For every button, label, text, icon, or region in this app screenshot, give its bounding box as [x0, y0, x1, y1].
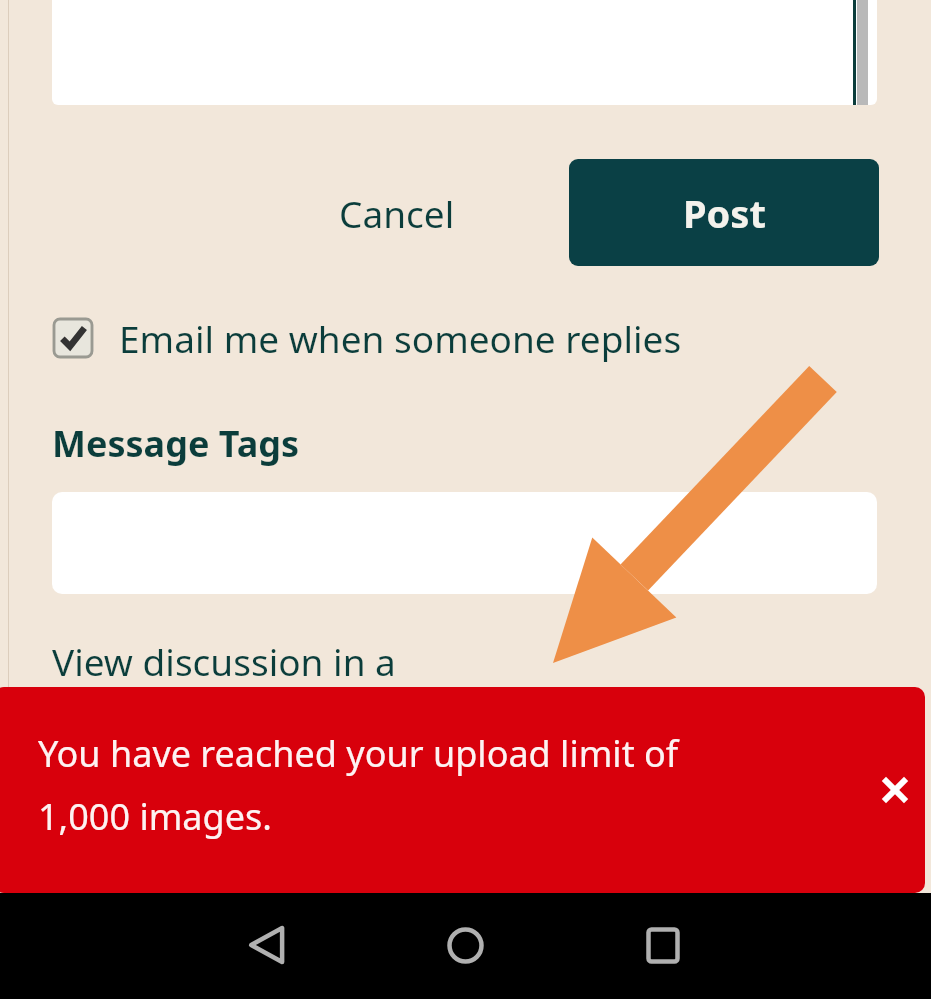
button[interactable]: Post	[569, 159, 879, 266]
button[interactable]: Back	[217, 895, 317, 995]
button[interactable]: Cancel	[322, 178, 472, 248]
staticText: View discussion in a popup	[52, 636, 504, 688]
staticText: You have reached your upload limit of 1,…	[38, 729, 778, 869]
button[interactable]	[52, 492, 877, 594]
staticText: Cancel	[339, 188, 455, 238]
button[interactable]: Dismiss	[866, 761, 924, 819]
staticText: Email me when someone replies	[119, 313, 682, 363]
button[interactable]: Home	[415, 895, 515, 995]
button[interactable]: You have reached your upload limit of 1,…	[0, 687, 925, 893]
button[interactable]	[52, 0, 877, 105]
staticText: Message Tags	[52, 419, 300, 468]
button[interactable]: Recent apps	[613, 895, 713, 995]
staticText: Post	[683, 187, 766, 239]
button[interactable]: Email me when someone replies	[46, 311, 656, 365]
button[interactable]: View discussion in a popup	[46, 636, 498, 688]
